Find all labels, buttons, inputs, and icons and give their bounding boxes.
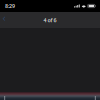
staticText: 8:29 <box>5 2 15 10</box>
button[interactable]: Back <box>0 12 11 28</box>
staticText: 4 of 6 <box>43 17 56 24</box>
